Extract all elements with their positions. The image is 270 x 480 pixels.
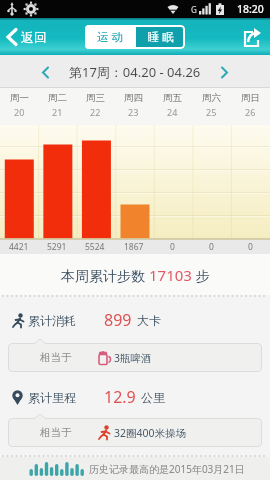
staticText: 899 bbox=[104, 309, 132, 331]
staticText: 第17周：04.20 - 04.26 bbox=[69, 63, 201, 81]
staticText: 26 bbox=[245, 106, 256, 118]
staticText: 步 bbox=[192, 266, 210, 285]
staticText: 18:20 bbox=[237, 2, 264, 16]
button[interactable]: 睡 眠 bbox=[136, 25, 185, 49]
staticText: 历史记录最高的是2015年03月21日 bbox=[89, 462, 245, 476]
staticText: 周五 bbox=[163, 92, 182, 104]
staticText: 周日 bbox=[241, 92, 260, 104]
button[interactable]: 运 动 bbox=[85, 25, 134, 49]
staticText: 20 bbox=[14, 106, 25, 118]
staticText: 周三 bbox=[86, 92, 105, 104]
staticText: 周一 bbox=[10, 92, 29, 104]
staticText: 返回 bbox=[21, 29, 47, 45]
button[interactable] bbox=[239, 25, 263, 49]
staticText: 0 bbox=[209, 241, 214, 253]
staticText: 3瓶啤酒 bbox=[114, 351, 152, 365]
staticText: 21 bbox=[52, 106, 63, 118]
staticText: 本周累计步数 bbox=[61, 266, 149, 285]
button[interactable]: 累计里程 bbox=[12, 384, 165, 410]
staticText: 12.9 bbox=[104, 386, 136, 408]
staticText: 累计里程 bbox=[28, 390, 76, 405]
staticText: 1867 bbox=[124, 241, 144, 253]
staticText: 累计消耗 bbox=[28, 313, 76, 328]
button[interactable]: 第17周：04.20 - 04.26 bbox=[42, 63, 228, 81]
button[interactable]: 历史记录最高的是2015年03月21日 bbox=[0, 457, 270, 480]
staticText: 相当于 bbox=[40, 426, 72, 439]
staticText: 5291 bbox=[47, 241, 67, 253]
button[interactable]: 累计消耗 bbox=[12, 307, 161, 333]
staticText: 大卡 bbox=[137, 313, 161, 328]
staticText: 24 bbox=[167, 106, 178, 118]
button[interactable]: 返回 bbox=[6, 28, 47, 46]
staticText: 25 bbox=[206, 106, 217, 118]
button[interactable]: 相当于 bbox=[40, 343, 262, 372]
staticText: 17103 bbox=[149, 265, 192, 285]
staticText: 周二 bbox=[48, 92, 67, 104]
staticText: 公里 bbox=[141, 390, 165, 405]
button[interactable]: 相当于 bbox=[40, 418, 262, 447]
staticText: 周六 bbox=[202, 92, 221, 104]
staticText: 23 bbox=[128, 106, 139, 118]
staticText: 运 动 bbox=[97, 29, 123, 45]
staticText: 0 bbox=[248, 241, 253, 253]
staticText: 32圈400米操场 bbox=[114, 426, 187, 440]
staticText: 睡 眠 bbox=[148, 29, 174, 45]
staticText: G bbox=[191, 4, 197, 15]
staticText: 0 bbox=[170, 241, 175, 253]
staticText: 周四 bbox=[124, 92, 143, 104]
staticText: 4421 bbox=[9, 241, 29, 253]
staticText: 5524 bbox=[85, 241, 105, 253]
staticText: 相当于 bbox=[40, 351, 72, 364]
staticText: 22 bbox=[90, 106, 101, 118]
